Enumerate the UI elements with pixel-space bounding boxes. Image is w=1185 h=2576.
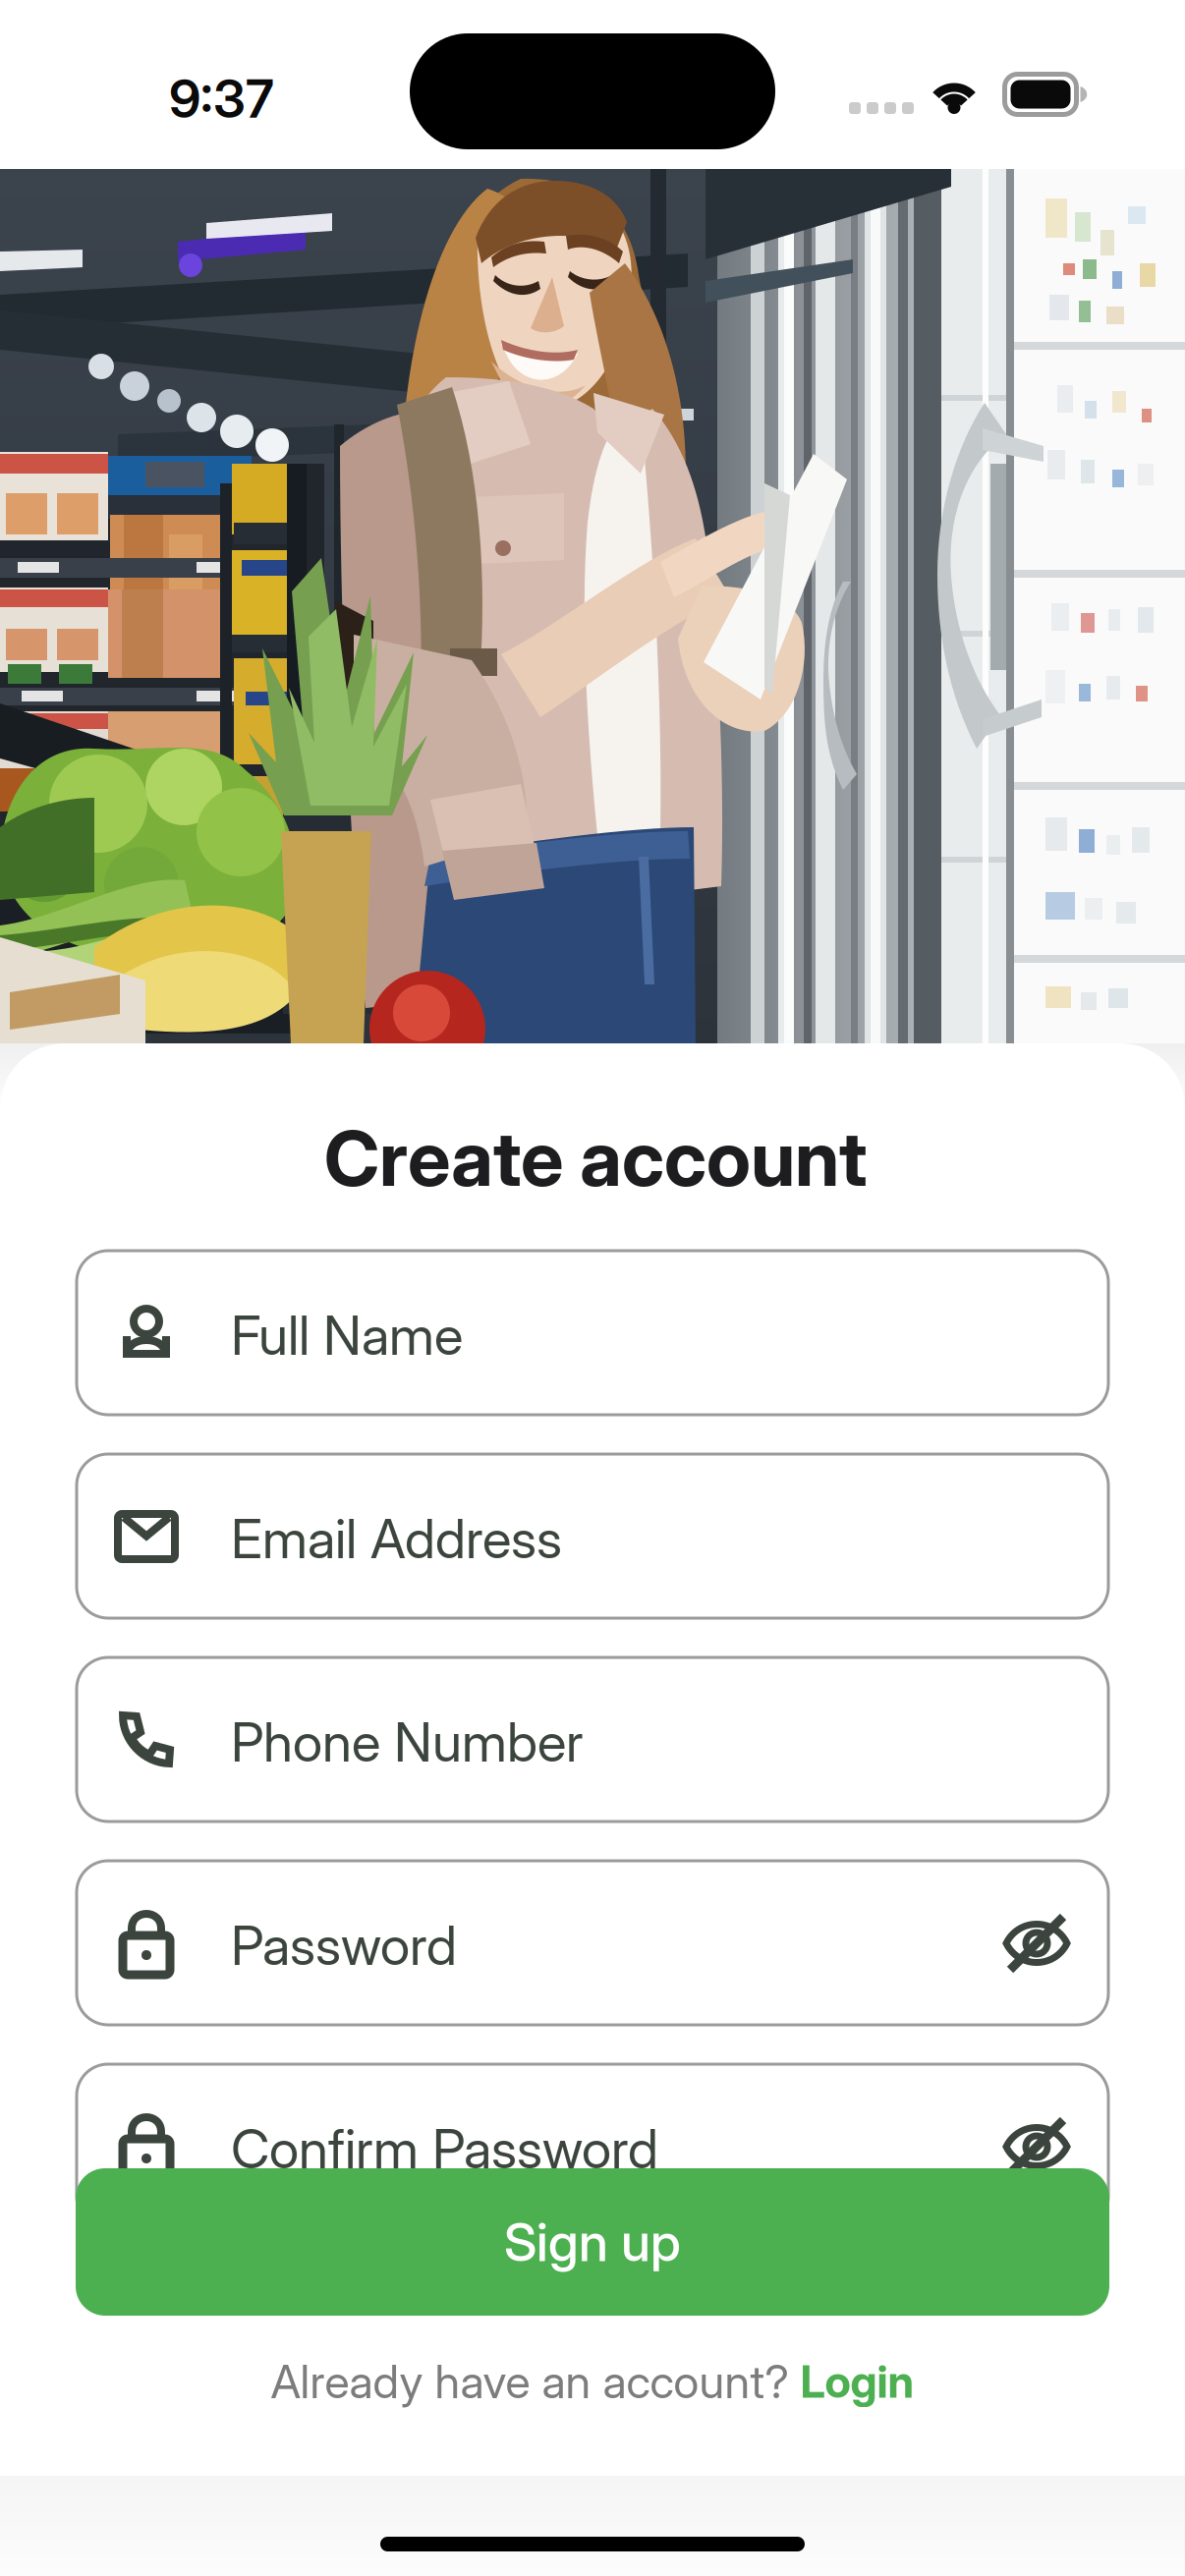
- staticText: Create account: [324, 1112, 868, 1204]
- button[interactable]: Full Name: [77, 1251, 1108, 1415]
- button[interactable]: Password: [77, 1861, 1108, 2025]
- button[interactable]: Already have an account?: [0, 2347, 1185, 2416]
- button[interactable]: Show password: [989, 1896, 1084, 1990]
- button[interactable]: Confirm Password: [77, 2064, 1108, 2228]
- staticText: 9:37: [169, 67, 274, 130]
- button[interactable]: Email Address: [77, 1454, 1108, 1618]
- staticText: Sign up: [504, 2210, 681, 2274]
- staticText: Already have an account?: [271, 2354, 800, 2409]
- staticText: Full Name: [231, 1303, 463, 1368]
- button[interactable]: Show password: [989, 2100, 1084, 2194]
- button[interactable]: Phone Number: [77, 1657, 1108, 1821]
- staticText: Phone Number: [231, 1709, 584, 1774]
- staticText: Login: [800, 2355, 914, 2408]
- staticText: Confirm Password: [231, 2116, 658, 2181]
- button[interactable]: Sign up: [76, 2168, 1109, 2316]
- staticText: Password: [231, 1913, 457, 1978]
- staticText: Email Address: [231, 1506, 562, 1571]
